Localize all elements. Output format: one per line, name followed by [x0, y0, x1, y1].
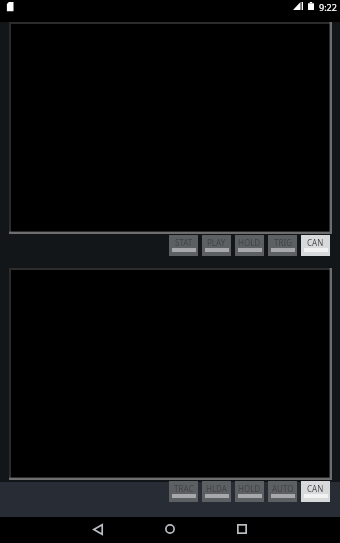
button[interactable]: PLAY: [202, 235, 231, 256]
button[interactable]: Recents: [222, 516, 262, 542]
staticText: AUTO: [272, 483, 294, 494]
button[interactable]: TRIG: [268, 235, 297, 256]
staticText: 9:22: [319, 1, 337, 13]
button[interactable]: Home: [150, 516, 190, 542]
staticText: HOLD: [238, 483, 261, 494]
staticText: HLDA: [206, 483, 227, 494]
staticText: CAN: [307, 237, 324, 248]
staticText: STAT: [175, 237, 193, 248]
staticText: TRIG: [274, 237, 292, 248]
button[interactable]: CAN: [301, 235, 330, 256]
button[interactable]: HLDA: [202, 481, 231, 502]
staticText: PLAY: [207, 237, 226, 248]
button[interactable]: HOLD: [235, 481, 264, 502]
button[interactable]: STAT: [169, 235, 198, 256]
staticText: CAN: [307, 483, 324, 494]
button[interactable]: HOLD: [235, 235, 264, 256]
button[interactable]: Back: [78, 516, 118, 542]
staticText: TRAC: [174, 483, 194, 494]
button[interactable]: AUTO: [268, 481, 297, 502]
button[interactable]: TRAC: [169, 481, 198, 502]
button[interactable]: CAN: [301, 481, 330, 502]
staticText: HOLD: [238, 237, 261, 248]
